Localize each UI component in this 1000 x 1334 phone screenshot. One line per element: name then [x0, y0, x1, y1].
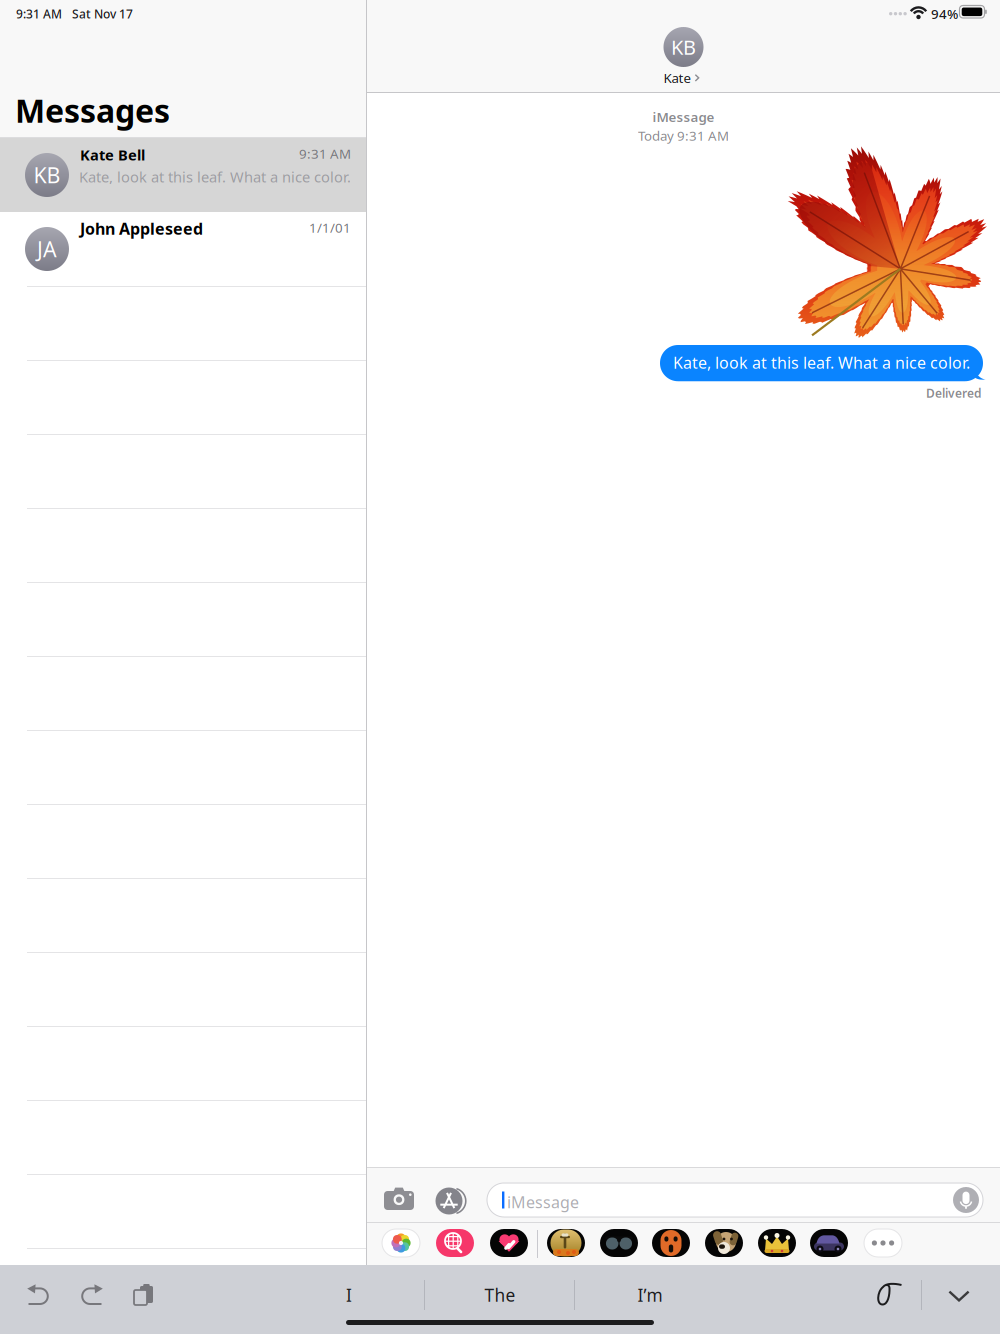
button[interactable]: I’m [585, 1275, 715, 1315]
staticText: iMessage [652, 108, 714, 126]
staticText: The [484, 1283, 515, 1306]
button[interactable]: Hide keyboard [948, 1290, 970, 1302]
button[interactable]: Take photo [384, 1186, 414, 1210]
button[interactable]: KB [640, 27, 726, 89]
staticText: JA [37, 235, 57, 263]
staticText: Today 9:31 AM [638, 127, 729, 144]
button[interactable]: Digital Touch [490, 1229, 528, 1257]
staticText: Delivered [926, 385, 982, 401]
button[interactable]: Scribble [873, 1282, 905, 1308]
staticText: Sat Nov 17 [72, 6, 133, 22]
button[interactable]: Sticker pack [547, 1229, 585, 1257]
staticText: iMessage [507, 1191, 579, 1213]
button[interactable]: KB [0, 138, 366, 212]
button[interactable]: Sticker pack [758, 1229, 796, 1257]
staticText: Kate Bell [80, 145, 145, 164]
button[interactable]: I [284, 1275, 414, 1315]
button[interactable]: Undo [25, 1283, 53, 1307]
staticText: Messages [15, 89, 170, 131]
button[interactable]: iMessage [487, 1183, 983, 1217]
staticText: 1/1/01 [309, 219, 351, 236]
button[interactable]: The [435, 1275, 565, 1315]
button[interactable]: Paste [134, 1284, 154, 1306]
button[interactable]: Sticker pack [652, 1229, 690, 1257]
staticText: 94% [931, 5, 958, 23]
button[interactable]: #images [436, 1229, 474, 1257]
staticText: 9:31 AM [16, 6, 62, 22]
staticText: 9:31 AM [299, 145, 351, 162]
staticText: KB [33, 161, 60, 189]
button[interactable]: Sticker pack [810, 1229, 848, 1257]
button[interactable]: Redo [77, 1283, 105, 1307]
staticText: KB [671, 34, 696, 60]
button[interactable]: JA [0, 212, 366, 286]
button[interactable]: More apps [864, 1229, 902, 1257]
staticText: Kate, look at this leaf. What a nice col… [79, 167, 351, 186]
staticText: I [346, 1283, 352, 1306]
staticText: I’m [637, 1283, 662, 1306]
button[interactable]: Sticker pack [600, 1229, 638, 1257]
staticText: Kate, look at this leaf. What a nice col… [673, 352, 970, 373]
staticText: John Appleseed [80, 218, 203, 239]
button[interactable]: iMessage apps [436, 1188, 467, 1215]
staticText: Kate [663, 69, 691, 87]
button[interactable]: Photos [382, 1229, 420, 1257]
button[interactable]: Sticker pack [705, 1229, 743, 1257]
